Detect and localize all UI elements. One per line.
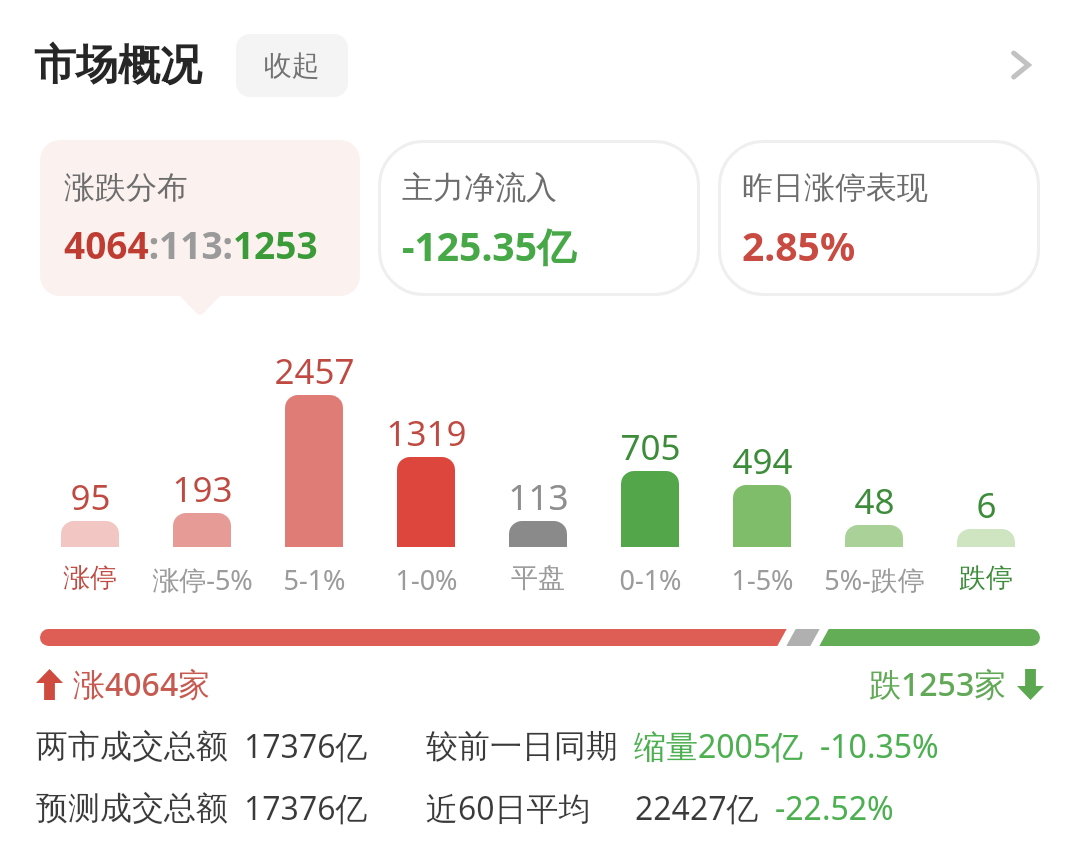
staticText: 近60日平均 [426,786,591,830]
staticText: 涨停-5% [152,561,253,598]
staticText: 平盘 [511,561,565,595]
staticText: -22.52% [775,786,894,830]
staticText: 17376亿 [244,786,368,830]
button[interactable]: 收起 [236,34,348,97]
staticText: 5%-跌停 [824,561,925,598]
button[interactable]: 跌1253家 [869,662,1044,706]
staticText: 5-1% [283,561,346,598]
staticText: 市场概况 [34,39,202,92]
staticText: 较前一日同期 [426,726,618,766]
staticText: 17376亿 [244,724,368,768]
staticText: 494 [732,437,793,485]
button[interactable]: 涨跌分布 [40,140,360,296]
staticText: 2.85% [742,219,856,272]
staticText: 2457 [274,347,355,395]
staticText: 48 [854,477,895,525]
staticText: 主力净流入 [402,168,557,207]
staticText: 1319 [386,409,467,457]
staticText: -10.35% [820,724,939,768]
staticText: 预测成交总额 [36,788,228,828]
staticText: 193 [172,465,233,513]
staticText: 22427亿 [635,786,759,830]
staticText: 涨4064家 [73,662,211,706]
staticText: 705 [620,423,681,471]
staticText: 涨跌分布 [64,168,188,207]
staticText: 1-5% [731,561,794,598]
staticText: 6 [976,481,997,529]
staticText: 95 [70,473,111,521]
staticText: 收起 [264,48,320,83]
staticText: 113 [508,473,569,521]
staticText: -125.35亿 [402,219,576,272]
staticText: 涨停 [63,561,117,595]
button[interactable]: 主力净流入 [378,140,700,296]
button[interactable]: 涨跌比例 [40,629,1040,646]
button[interactable]: 昨日涨停表现 [718,140,1040,296]
button[interactable]: 查看更多 [998,42,1044,88]
button[interactable]: 涨4064家 [36,662,211,706]
staticText: 4064:113:1253 [64,219,318,269]
staticText: 1-0% [395,561,458,598]
staticText: 跌1253家 [869,662,1007,706]
staticText: 跌停 [959,561,1013,595]
staticText: 0-1% [619,561,682,598]
staticText: 昨日涨停表现 [742,168,928,207]
staticText: 两市成交总额 [36,726,228,766]
staticText: 缩量2005亿 [634,724,804,768]
